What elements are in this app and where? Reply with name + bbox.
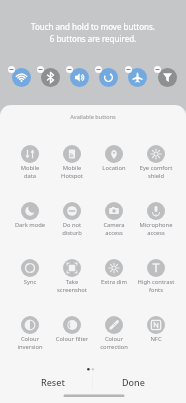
- staticText: Location: [93, 164, 135, 172]
- button[interactable]: Remove Bluetooth: [37, 66, 44, 73]
- button[interactable]: Dark mode: [9, 202, 51, 220]
- staticText: Eye comfort shield: [135, 164, 177, 179]
- button[interactable]: Wi-Fi: [12, 68, 31, 87]
- staticText: NFC: [135, 335, 177, 343]
- button[interactable]: NFC: [135, 316, 177, 334]
- button[interactable]: Take screenshot: [51, 259, 93, 277]
- staticText: Mobile Hotspot: [51, 164, 93, 179]
- button[interactable]: Colour inversion: [9, 316, 51, 334]
- button[interactable]: Remove Filter: [154, 66, 161, 73]
- staticText: 6 buttons are required.: [0, 33, 186, 44]
- button[interactable]: Sync: [9, 259, 51, 277]
- staticText: Colour correction: [93, 335, 135, 350]
- button[interactable]: Colour correction: [93, 316, 135, 334]
- staticText: Dark mode: [9, 221, 51, 229]
- staticText: Do not disturb: [51, 221, 93, 236]
- staticText: Colour filter: [51, 335, 93, 343]
- staticText: Camera access: [93, 221, 135, 236]
- button[interactable]: Do not disturb: [51, 202, 93, 220]
- button[interactable]: Reset: [12, 362, 93, 402]
- button[interactable]: Mobile Hotspot: [51, 145, 93, 163]
- button[interactable]: Remove Wi-Fi: [8, 66, 15, 73]
- staticText: Take screenshot: [51, 278, 93, 293]
- button[interactable]: Location: [93, 145, 135, 163]
- staticText: Microphone access: [135, 221, 177, 236]
- staticText: Touch and hold to move buttons.: [0, 21, 186, 32]
- button[interactable]: Extra dim: [93, 259, 135, 277]
- button[interactable]: Microphone access: [135, 202, 177, 220]
- button[interactable]: Sound: [70, 68, 89, 87]
- staticText: High contrast fonts: [135, 278, 177, 293]
- button[interactable]: High contrast fonts: [135, 259, 177, 277]
- staticText: Colour inversion: [9, 335, 51, 350]
- button[interactable]: Auto rotate: [99, 68, 118, 87]
- staticText: Extra dim: [93, 278, 135, 286]
- button[interactable]: Camera access: [93, 202, 135, 220]
- staticText: Available buttons: [0, 113, 186, 121]
- button[interactable]: Filter: [158, 68, 177, 87]
- button[interactable]: Mobile data: [9, 145, 51, 163]
- staticText: Reset: [41, 376, 65, 388]
- button[interactable]: Colour filter: [51, 316, 93, 334]
- button[interactable]: Eye comfort shield: [135, 145, 177, 163]
- button[interactable]: Bluetooth: [41, 68, 60, 87]
- staticText: Sync: [9, 278, 51, 286]
- button[interactable]: Done: [93, 362, 174, 402]
- button[interactable]: Remove Auto rotate: [95, 66, 102, 73]
- button[interactable]: Remove Sound: [66, 66, 73, 73]
- staticText: Mobile data: [9, 164, 51, 179]
- button[interactable]: Remove Flight mode: [125, 66, 132, 73]
- staticText: Done: [122, 376, 145, 388]
- button[interactable]: Flight mode: [128, 68, 147, 87]
